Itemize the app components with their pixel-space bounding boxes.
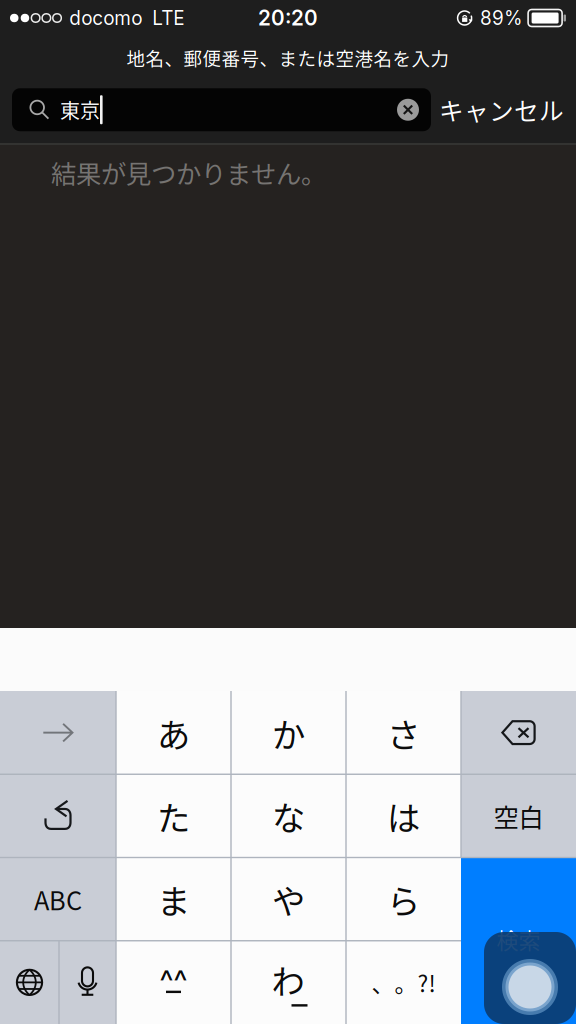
staticText: な (272, 792, 305, 840)
button[interactable]: は (346, 774, 461, 857)
button[interactable]: な (231, 774, 346, 857)
staticText: さ (387, 708, 420, 757)
button[interactable]: 、。?! (346, 941, 461, 1024)
staticText: あ (157, 708, 190, 757)
button[interactable] (461, 691, 576, 774)
staticText: 地名、郵便番号、または空港名を入力 (126, 44, 449, 71)
button[interactable]: さ (346, 691, 461, 774)
staticText: は (387, 792, 420, 840)
button[interactable]: ABC (0, 857, 116, 941)
staticText: 結果が見つかりません。 (51, 154, 326, 191)
button[interactable]: ら (346, 857, 461, 941)
button[interactable] (0, 774, 116, 857)
staticText: わ (271, 955, 304, 1003)
button[interactable]: ま (116, 857, 231, 941)
staticText: 空白 (493, 797, 543, 834)
staticText: ら (387, 875, 420, 923)
staticText: ABC (34, 881, 82, 917)
button[interactable]: 検索 (461, 857, 576, 1024)
staticText: docomo (69, 6, 142, 29)
button[interactable]: か (231, 691, 346, 774)
staticText: 89% (480, 6, 523, 29)
staticText: ^^ (159, 963, 187, 1000)
button[interactable]: あ (116, 691, 231, 774)
button[interactable]: や (231, 857, 346, 941)
staticText: か (272, 708, 305, 757)
button[interactable]: わ (231, 941, 346, 1024)
staticText: ま (157, 875, 190, 923)
button[interactable]: た (116, 774, 231, 857)
staticText: 検索 (496, 923, 540, 955)
staticText: 東京 (60, 95, 100, 124)
staticText: LTE (152, 6, 184, 29)
button[interactable]: AssistiveTouch (484, 932, 576, 1024)
button[interactable]: 空白 (461, 774, 576, 857)
staticText: キャンセル (439, 92, 564, 128)
button[interactable]: ^^ (116, 941, 231, 1024)
button[interactable] (0, 691, 116, 774)
staticText: 、。?! (371, 966, 435, 999)
button[interactable]: Switch keyboard (0, 941, 59, 1024)
staticText: 20:20 (258, 5, 318, 30)
button[interactable]: キャンセル (439, 92, 564, 128)
button[interactable]: 東京 (12, 88, 431, 131)
staticText: た (157, 792, 190, 840)
staticText: や (272, 875, 305, 923)
button[interactable]: Dictation (59, 941, 116, 1024)
